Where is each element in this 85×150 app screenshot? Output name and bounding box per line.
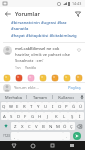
staticText: Kullanıcı: [58, 95, 74, 100]
button[interactable]: S: [8, 112, 15, 120]
staticText: H: [38, 113, 42, 119]
button[interactable]: Yorum ekle...: [14, 85, 67, 91]
button[interactable]: blossom: [26, 73, 35, 82]
staticText: O: [58, 103, 62, 109]
button[interactable]: Paylaş: [67, 85, 82, 91]
staticText: Paylaş: [68, 85, 81, 91]
staticText: D: [17, 113, 21, 119]
button[interactable]: ?123: [1, 132, 11, 140]
button[interactable]: C: [26, 122, 33, 130]
button[interactable]: Ş: [68, 112, 76, 120]
staticText: K: [55, 113, 58, 119]
button[interactable]: Send: [73, 132, 81, 140]
staticText: P: [65, 103, 68, 109]
button[interactable]: .: [63, 132, 70, 140]
button[interactable]: D: [15, 112, 22, 120]
button[interactable]: X: [19, 122, 26, 130]
staticText: B: [42, 123, 45, 129]
staticText: L: [63, 113, 66, 119]
button[interactable]: E: [14, 102, 21, 110]
button[interactable]: V: [33, 122, 40, 130]
button[interactable]: Recents: [47, 141, 58, 150]
button[interactable]: A: [1, 112, 8, 120]
button[interactable]: O: [56, 102, 63, 110]
button[interactable]: Back: [8, 141, 19, 150]
staticText: İ: [79, 113, 81, 119]
staticText: E: [16, 103, 19, 109]
staticText: ?123: [3, 134, 10, 138]
staticText: meLcakBilimsel ne cok: [15, 46, 60, 52]
staticText: Tamam: [33, 95, 47, 100]
button[interactable]: W: [7, 102, 14, 110]
staticText: X: [21, 123, 24, 129]
button[interactable]: smile: [2, 73, 11, 82]
button[interactable]: Ç: [68, 122, 75, 130]
staticText: F: [24, 113, 27, 119]
button[interactable]: F: [22, 112, 29, 120]
button[interactable]: laugh: [38, 73, 47, 82]
button[interactable]: Ö: [61, 122, 68, 130]
staticText: Z: [14, 123, 17, 129]
button[interactable]: wow: [50, 73, 59, 82]
staticText: ,: [14, 134, 16, 139]
button[interactable]: Backspace: [75, 122, 84, 130]
button[interactable]: T: [28, 102, 35, 110]
button[interactable]: Kullanıcı: [53, 93, 78, 101]
button[interactable]: N: [47, 122, 54, 130]
button[interactable]: Like: [75, 46, 82, 53]
button[interactable]: U: [42, 102, 49, 110]
button[interactable]: Switch keyboard: [66, 141, 77, 150]
staticText: A: [3, 113, 6, 119]
button[interactable]: J: [44, 112, 52, 120]
staticText: Sosalnotz :cm': [15, 58, 44, 64]
button[interactable]: Y: [35, 102, 42, 110]
button[interactable]: Z: [11, 122, 19, 130]
button[interactable]: G: [29, 112, 36, 120]
button[interactable]: R: [21, 102, 28, 110]
staticText: #hayat #kitapbitisi #kitabimlazig: [11, 33, 77, 39]
button[interactable]: Ğ: [70, 102, 77, 110]
staticText: Y: [37, 103, 40, 109]
staticText: I: [52, 103, 54, 109]
staticText: Ö: [63, 123, 67, 129]
staticText: Yanitla: [25, 65, 36, 70]
button[interactable]: #birsanatcinin #ugrasi #kaz #sanatla: [0, 19, 85, 42]
button[interactable]: clap: [74, 73, 83, 82]
staticText: C: [28, 123, 31, 129]
staticText: .: [66, 134, 68, 139]
staticText: G: [31, 113, 35, 119]
button[interactable]: meLcakBilimsel ne cok: [0, 43, 85, 72]
button[interactable]: K: [52, 112, 60, 120]
button[interactable]: Home: [27, 141, 38, 150]
button[interactable]: M: [54, 122, 61, 130]
staticText: Ş: [71, 113, 74, 119]
button[interactable]: Filter: [73, 9, 82, 18]
staticText: T: [30, 103, 33, 109]
button[interactable]: Back: [3, 9, 12, 18]
staticText: U: [44, 103, 48, 109]
button[interactable]: L: [60, 112, 68, 120]
staticText: 1sn: [15, 65, 21, 70]
button[interactable]: Merhaba: [0, 93, 26, 101]
staticText: Ü: [79, 103, 83, 109]
button[interactable]: I: [49, 102, 56, 110]
button[interactable]: Yanitla: [25, 65, 36, 70]
staticText: J: [47, 113, 49, 119]
button[interactable]: fire: [14, 73, 23, 82]
button[interactable]: P: [63, 102, 70, 110]
button[interactable]: B: [40, 122, 47, 130]
staticText: Yorumlar: [15, 10, 40, 17]
staticText: N: [49, 123, 53, 129]
button[interactable]: Tamam: [27, 93, 52, 101]
staticText: hazirlar, olmik ve pahset olse: [15, 52, 71, 58]
staticText: V: [35, 123, 38, 129]
button[interactable]: Q: [1, 102, 7, 110]
button[interactable]: Shift: [1, 122, 11, 130]
button[interactable]: ,: [11, 132, 18, 140]
button[interactable]: H: [36, 112, 44, 120]
button[interactable]: cry: [62, 73, 71, 82]
button[interactable]: Voice input: [78, 93, 85, 101]
button[interactable]: İ: [76, 112, 84, 120]
button[interactable]: Ü: [77, 102, 84, 110]
